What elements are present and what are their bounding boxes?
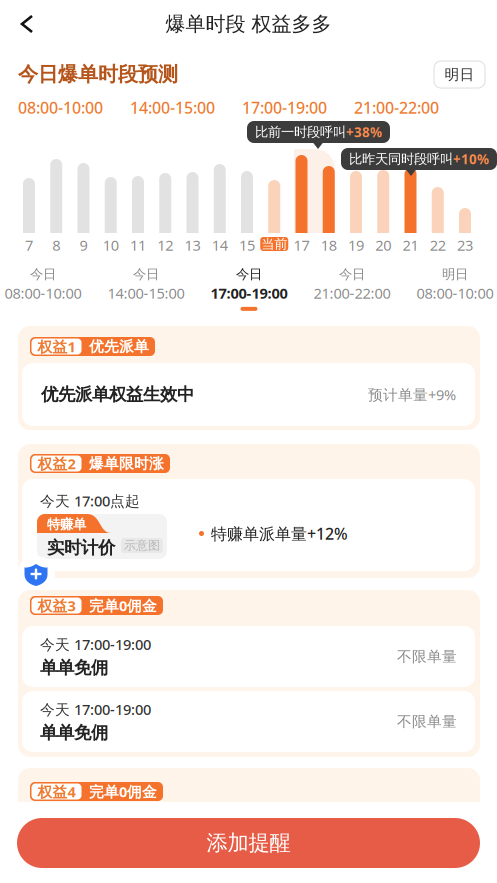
staticText: 18 bbox=[321, 235, 337, 255]
staticText: 不限单量 bbox=[397, 647, 457, 665]
staticText: 添加提醒 bbox=[206, 830, 290, 856]
staticText: 权益4 bbox=[37, 782, 75, 801]
staticText: 7 bbox=[25, 235, 33, 255]
staticText: 爆单限时涨 bbox=[89, 454, 164, 472]
staticText: 完单0佣金 bbox=[89, 596, 157, 615]
button[interactable]: 今日 bbox=[0, 266, 94, 310]
staticText: 不限单量 bbox=[397, 712, 457, 730]
staticText: 当前 bbox=[261, 236, 287, 252]
staticText: 预计单量+9% bbox=[368, 385, 456, 404]
staticText: 13 bbox=[184, 235, 200, 255]
staticText: 今天 17:00-19:00 bbox=[40, 700, 151, 719]
button[interactable]: 明日 bbox=[434, 61, 485, 88]
staticText: +38% bbox=[346, 123, 382, 141]
staticText: 明日 bbox=[442, 266, 468, 282]
staticText: 比前一时段呼叫 bbox=[255, 124, 346, 140]
staticText: 14:00-15:00 bbox=[107, 283, 184, 303]
staticText: 优先派单 bbox=[89, 337, 149, 355]
staticText: 今日 bbox=[339, 266, 365, 282]
staticText: 示意图 bbox=[124, 538, 160, 553]
button[interactable]: 今日 bbox=[95, 266, 197, 310]
button[interactable]: 添加提醒 bbox=[17, 818, 480, 868]
staticText: 17:00-19:00 bbox=[242, 97, 327, 118]
staticText: 10 bbox=[103, 235, 119, 255]
staticText: 14 bbox=[212, 235, 228, 255]
staticText: 16 bbox=[266, 235, 282, 255]
staticText: 11 bbox=[130, 235, 146, 255]
staticText: 21 bbox=[402, 235, 418, 255]
staticText: 08:00-10:00 bbox=[18, 97, 103, 118]
staticText: 17:00-19:00 bbox=[210, 283, 287, 303]
staticText: +10% bbox=[453, 150, 489, 168]
staticText: 20 bbox=[375, 235, 391, 255]
staticText: 12 bbox=[157, 235, 173, 255]
staticText: 权益2 bbox=[37, 454, 75, 473]
staticText: 17 bbox=[293, 235, 309, 255]
button[interactable]: 添加权益 bbox=[17, 556, 55, 594]
staticText: 明日 bbox=[444, 65, 474, 83]
staticText: 15 bbox=[239, 235, 255, 255]
staticText: 今日爆单时段预测 bbox=[18, 62, 178, 87]
staticText: 实时计价 bbox=[47, 537, 115, 558]
button[interactable]: 明日 bbox=[404, 266, 497, 310]
staticText: 21:00-22:00 bbox=[354, 97, 439, 118]
staticText: 14:00-15:00 bbox=[130, 97, 215, 118]
staticText: 今天 17:00点起 bbox=[40, 491, 140, 510]
staticText: 优先派单权益生效中 bbox=[41, 384, 194, 405]
staticText: 8 bbox=[52, 235, 60, 255]
button[interactable]: 今日 bbox=[198, 266, 300, 310]
staticText: 今日 bbox=[30, 266, 56, 282]
staticText: 比昨天同时段呼叫 bbox=[349, 151, 453, 167]
staticText: 22 bbox=[430, 235, 446, 255]
staticText: 今天 17:00-19:00 bbox=[40, 635, 151, 654]
staticText: 08:00-10:00 bbox=[4, 283, 81, 303]
staticText: 爆单时段 权益多多 bbox=[165, 12, 331, 36]
staticText: 23 bbox=[457, 235, 473, 255]
button[interactable]: 今日 bbox=[301, 266, 403, 310]
staticText: 特赚单派单量+12% bbox=[211, 523, 348, 544]
staticText: 特赚单 bbox=[47, 516, 86, 532]
staticText: 今日 bbox=[236, 266, 262, 282]
staticText: 08:00-10:00 bbox=[416, 283, 493, 303]
staticText: 完单0佣金 bbox=[89, 782, 157, 801]
staticText: 权益3 bbox=[37, 596, 75, 615]
staticText: 单单免佣 bbox=[40, 722, 108, 743]
staticText: 单单免佣 bbox=[40, 657, 108, 678]
staticText: 权益1 bbox=[37, 337, 75, 356]
staticText: 19 bbox=[348, 235, 364, 255]
staticText: 今日 bbox=[133, 266, 159, 282]
staticText: 9 bbox=[79, 235, 87, 255]
staticText: 21:00-22:00 bbox=[313, 283, 390, 303]
button[interactable]: 返回 bbox=[5, 2, 49, 46]
